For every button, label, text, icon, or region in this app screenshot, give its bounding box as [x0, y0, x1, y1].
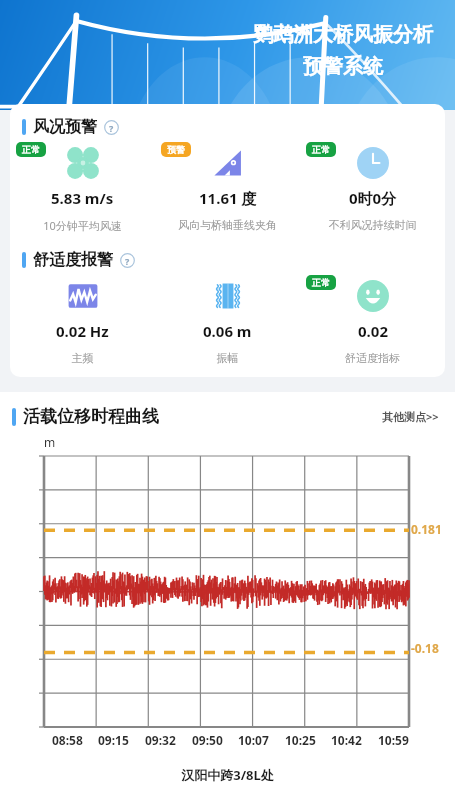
staticText: 0.02: [358, 321, 388, 341]
button[interactable]: 帮助: [104, 120, 119, 135]
staticText: 0.02 Hz: [56, 321, 109, 341]
staticText: 正常: [22, 144, 40, 155]
staticText: 0.4: [22, 456, 40, 457]
staticText: 0.181: [411, 521, 442, 537]
staticText: 舒适度报警: [33, 250, 113, 270]
staticText: m: [44, 434, 56, 450]
button[interactable]: 0.06 m: [155, 273, 300, 365]
button[interactable]: 正常: [300, 140, 445, 232]
staticText: 0.2: [22, 523, 40, 524]
staticText: 10分钟平均风速: [10, 218, 155, 233]
button[interactable]: 帮助: [120, 253, 135, 268]
staticText: 预警系统: [303, 54, 383, 79]
staticText: 10:59: [378, 732, 409, 748]
staticText: 风况预警: [33, 117, 97, 137]
staticText: 0.06 m: [203, 321, 252, 341]
staticText: 活载位移时程曲线: [23, 406, 159, 427]
staticText: 0.3: [22, 489, 40, 490]
staticText: 主频: [10, 351, 155, 365]
button[interactable]: 其他测点>>: [378, 405, 443, 428]
staticText: 10:25: [285, 732, 316, 748]
staticText: 10:42: [331, 732, 362, 748]
staticText: 舒适度指标: [300, 351, 445, 365]
staticText: 风向与桥轴垂线夹角: [155, 218, 300, 232]
button[interactable]: 正常: [10, 140, 155, 233]
button[interactable]: 预警: [155, 140, 300, 232]
staticText: 正常: [312, 277, 330, 288]
staticText: ?: [109, 122, 114, 134]
staticText: 0: [33, 590, 40, 591]
staticText: 其他测点>>: [382, 409, 439, 424]
staticText: 正常: [312, 144, 330, 155]
staticText: -0.18: [411, 640, 439, 656]
staticText: 0时0分: [349, 188, 397, 208]
staticText: 08:58: [52, 732, 83, 748]
staticText: 11.61 度: [199, 188, 257, 208]
staticText: 10:07: [238, 732, 269, 748]
staticText: 09:15: [98, 732, 129, 748]
staticText: 鹦鹉洲大桥风振分析: [253, 22, 433, 47]
staticText: 09:32: [145, 732, 176, 748]
staticText: ?: [125, 255, 130, 267]
staticText: 汉阳中跨3/8L处: [0, 766, 455, 784]
staticText: 09:50: [192, 732, 223, 748]
button[interactable]: 0.02 Hz: [10, 273, 155, 365]
staticText: 5.83 m/s: [51, 188, 114, 208]
staticText: 振幅: [155, 351, 300, 365]
button[interactable]: 正常: [300, 273, 445, 365]
staticText: 不利风况持续时间: [300, 218, 445, 232]
staticText: 预警: [167, 144, 185, 155]
